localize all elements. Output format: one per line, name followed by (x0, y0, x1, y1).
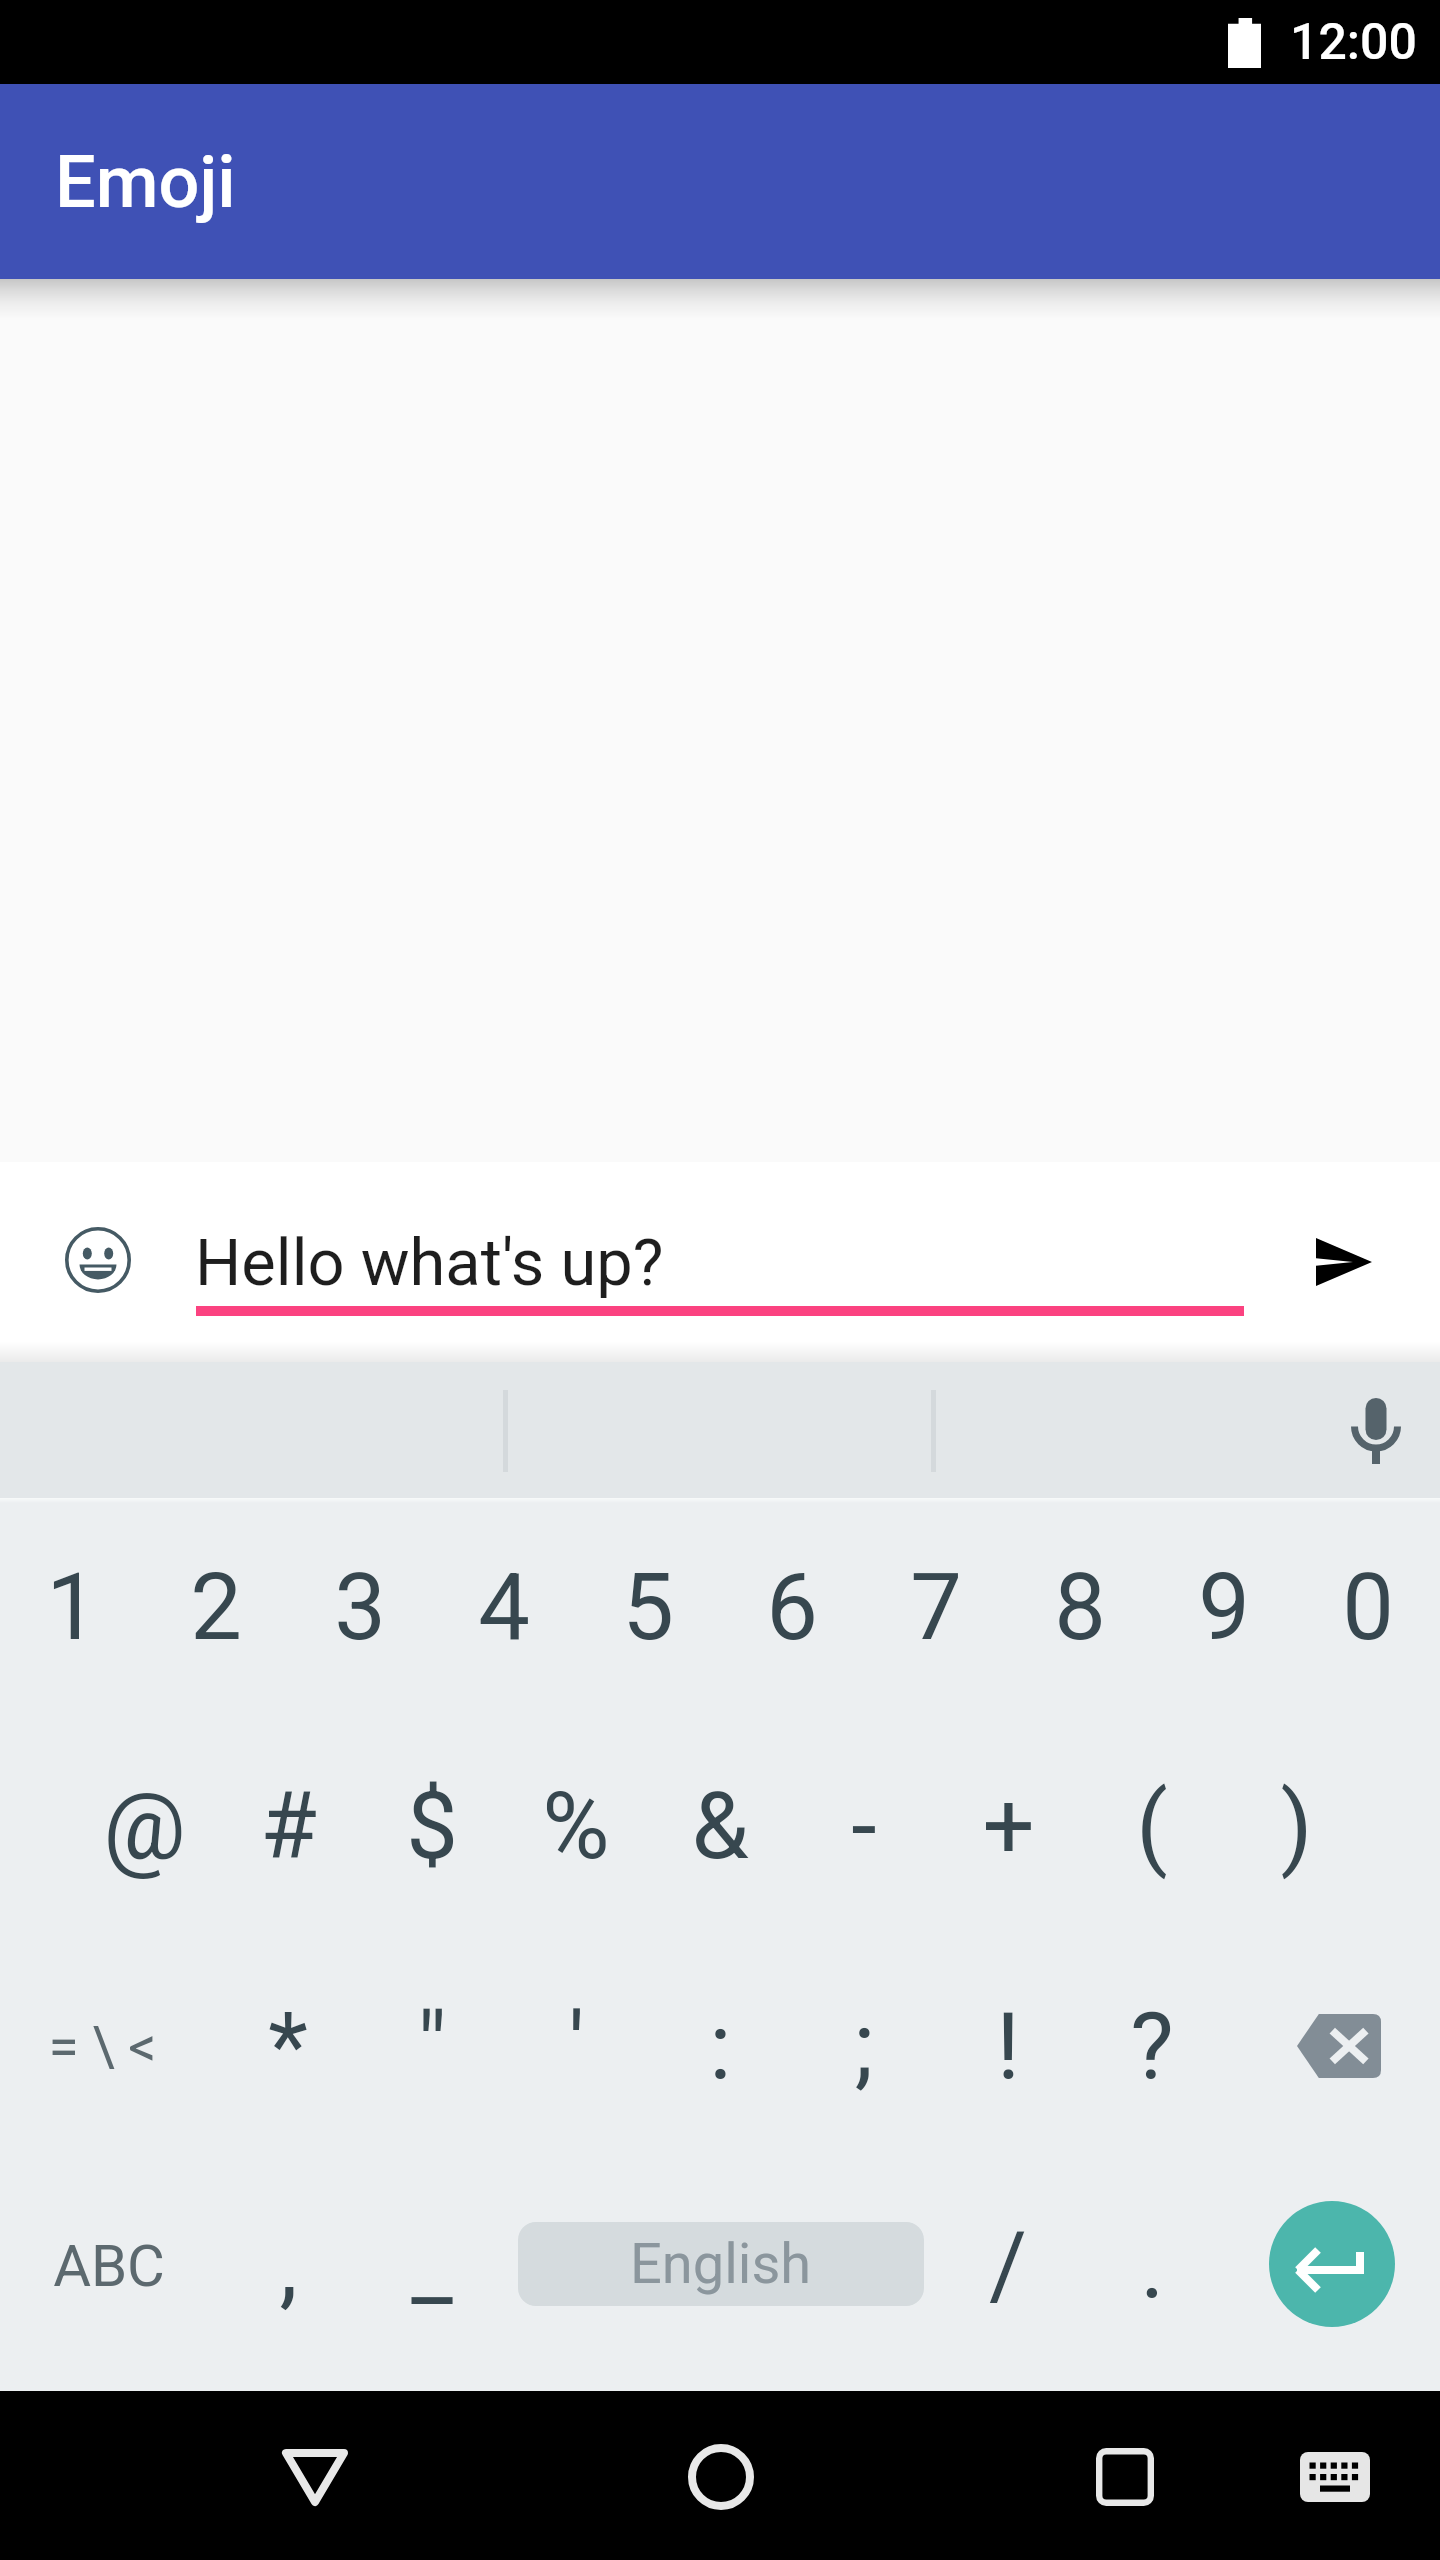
button[interactable]: _ (360, 2194, 504, 2338)
staticText: , (279, 2212, 298, 2320)
button[interactable]: & (648, 1755, 792, 1899)
staticText: 5 (622, 1554, 674, 1662)
staticText: / (989, 2212, 1027, 2320)
staticText: 9 (1198, 1554, 1250, 1662)
button[interactable]: , (216, 2194, 360, 2338)
staticText: @ (103, 1773, 186, 1881)
staticText: 7 (910, 1554, 962, 1662)
button[interactable]: " (360, 1975, 504, 2119)
staticText: Hello what's up? (195, 1225, 664, 1301)
staticText: 3 (334, 1554, 386, 1662)
button[interactable]: Backspace (1267, 1974, 1411, 2118)
button[interactable]: . (1080, 2194, 1224, 2338)
staticText: 2 (190, 1554, 242, 1662)
staticText: 0 (1342, 1554, 1394, 1662)
staticText: 8 (1054, 1554, 1106, 1662)
button[interactable]: + (936, 1755, 1080, 1899)
staticText: & (691, 1773, 749, 1881)
button[interactable]: = \ < (30, 1975, 174, 2119)
staticText: ! (996, 1993, 1020, 2101)
button[interactable]: ABC (37, 2194, 181, 2338)
staticText: _ (411, 2212, 453, 2320)
button[interactable]: ! (936, 1975, 1080, 2119)
button[interactable]: - (792, 1755, 936, 1899)
button[interactable]: 8 (1008, 1536, 1152, 1680)
staticText: 12:00 (1290, 13, 1417, 72)
button[interactable]: Voice input (1330, 1387, 1422, 1479)
button[interactable]: ; (792, 1975, 936, 2119)
button[interactable]: English (518, 2222, 924, 2306)
button[interactable]: ) (1224, 1755, 1368, 1899)
button[interactable]: Emoji (56, 1218, 140, 1302)
staticText: ; (854, 1993, 874, 2101)
button[interactable]: Home (649, 2405, 793, 2549)
button[interactable]: % (504, 1755, 648, 1899)
button[interactable]: 4 (432, 1536, 576, 1680)
button[interactable]: : (648, 1975, 792, 2119)
button[interactable]: $ (360, 1755, 504, 1899)
button[interactable]: 2 (144, 1536, 288, 1680)
button[interactable]: 0 (1296, 1536, 1440, 1680)
button[interactable]: # (216, 1755, 360, 1899)
button[interactable]: Back (243, 2405, 387, 2549)
staticText: - (851, 1773, 877, 1881)
staticText: % (542, 1773, 610, 1881)
button[interactable]: 7 (864, 1536, 1008, 1680)
staticText: ) (1280, 1773, 1313, 1881)
staticText: 4 (478, 1554, 530, 1662)
button[interactable]: ( (1080, 1755, 1224, 1899)
button[interactable]: 5 (576, 1536, 720, 1680)
button[interactable]: ? (1080, 1975, 1224, 2119)
button[interactable]: 9 (1152, 1536, 1296, 1680)
button[interactable]: ' (504, 1975, 648, 2119)
button[interactable]: / (936, 2194, 1080, 2338)
staticText: ( (1136, 1773, 1168, 1881)
button[interactable]: 3 (288, 1536, 432, 1680)
button[interactable]: 1 (0, 1536, 144, 1680)
staticText: " (417, 1993, 447, 2101)
staticText: # (260, 1773, 317, 1881)
staticText: = \ < (48, 2015, 157, 2079)
staticText: 6 (766, 1554, 818, 1662)
staticText: : (709, 1993, 732, 2101)
button[interactable]: Recents (1053, 2405, 1197, 2549)
staticText: * (268, 1993, 308, 2101)
button[interactable]: @ (72, 1755, 216, 1899)
staticText: Emoji (55, 140, 236, 224)
staticText: ' (568, 1993, 585, 2101)
button[interactable]: Switch keyboard (1263, 2405, 1407, 2549)
staticText: English (630, 2231, 812, 2297)
button[interactable]: Enter (1269, 2201, 1395, 2327)
staticText: $ (406, 1773, 458, 1881)
staticText: 1 (46, 1554, 98, 1662)
staticText: ABC (53, 2232, 165, 2300)
staticText: + (982, 1773, 1035, 1881)
button[interactable]: 6 (720, 1536, 864, 1680)
staticText: ? (1130, 1993, 1174, 2101)
button[interactable]: * (216, 1975, 360, 2119)
staticText: . (1140, 2212, 1165, 2320)
button[interactable]: Send (1294, 1212, 1394, 1312)
